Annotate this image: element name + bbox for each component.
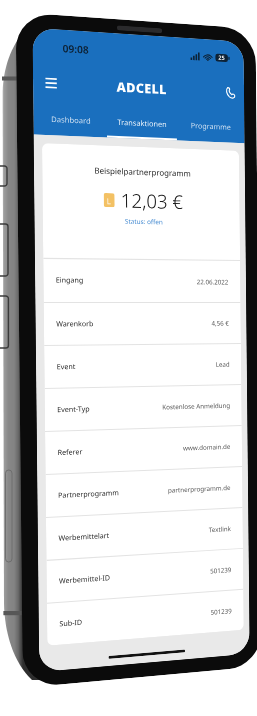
button[interactable]: Programme	[177, 108, 244, 143]
button[interactable]: Werbemittelart	[46, 508, 243, 560]
staticText: Werbemittel-ID	[59, 573, 111, 587]
staticText: Lead	[216, 360, 230, 369]
button[interactable]: Event-Typ	[45, 385, 242, 431]
staticText: 09:08	[62, 41, 89, 57]
staticText: Programme	[190, 120, 231, 132]
staticText: 25	[218, 54, 225, 62]
staticText: L	[107, 195, 112, 206]
button[interactable]: Eingang	[43, 259, 240, 302]
button[interactable]: Werbemittel-ID	[46, 549, 243, 603]
button[interactable]: Menü	[39, 71, 62, 95]
button[interactable]: Transaktionen	[107, 104, 177, 140]
staticText: 501239	[210, 565, 232, 575]
staticText: Status: offen	[125, 217, 163, 226]
button[interactable]: Anrufen	[219, 81, 240, 104]
staticText: Sub-ID	[59, 617, 83, 629]
staticText: Referer	[58, 447, 83, 458]
staticText: Partnerprogramm	[58, 488, 120, 501]
button[interactable]: Event	[44, 344, 241, 388]
staticText: 12,03 €	[120, 187, 183, 215]
staticText: www.domain.de	[183, 442, 231, 452]
staticText: 22.06.2022	[197, 277, 229, 286]
staticText: 4,56 €	[211, 319, 229, 328]
staticText: Werbemittelart	[58, 531, 109, 544]
staticText: Event	[57, 362, 76, 372]
staticText: Eingang	[56, 275, 83, 286]
button[interactable]: Dashboard	[33, 101, 107, 137]
staticText: Kostenlose Anmeldung	[162, 401, 230, 411]
button[interactable]: Partnerprogramm	[45, 467, 243, 517]
staticText: Event-Typ	[57, 404, 90, 415]
staticText: ADCELL	[116, 77, 167, 98]
staticText: Beispielpartnerprogramm	[94, 164, 191, 178]
staticText: partnerprogramm.de	[168, 483, 231, 495]
staticText: 501239	[210, 606, 232, 617]
staticText: Warenkorb	[56, 319, 94, 329]
staticText: Transaktionen	[117, 117, 167, 129]
staticText: Textlink	[209, 524, 231, 534]
staticText: Dashboard	[51, 114, 91, 126]
button[interactable]: Referer	[45, 426, 242, 474]
button[interactable]: Sub-ID	[47, 590, 244, 646]
button[interactable]: Warenkorb	[44, 303, 241, 345]
